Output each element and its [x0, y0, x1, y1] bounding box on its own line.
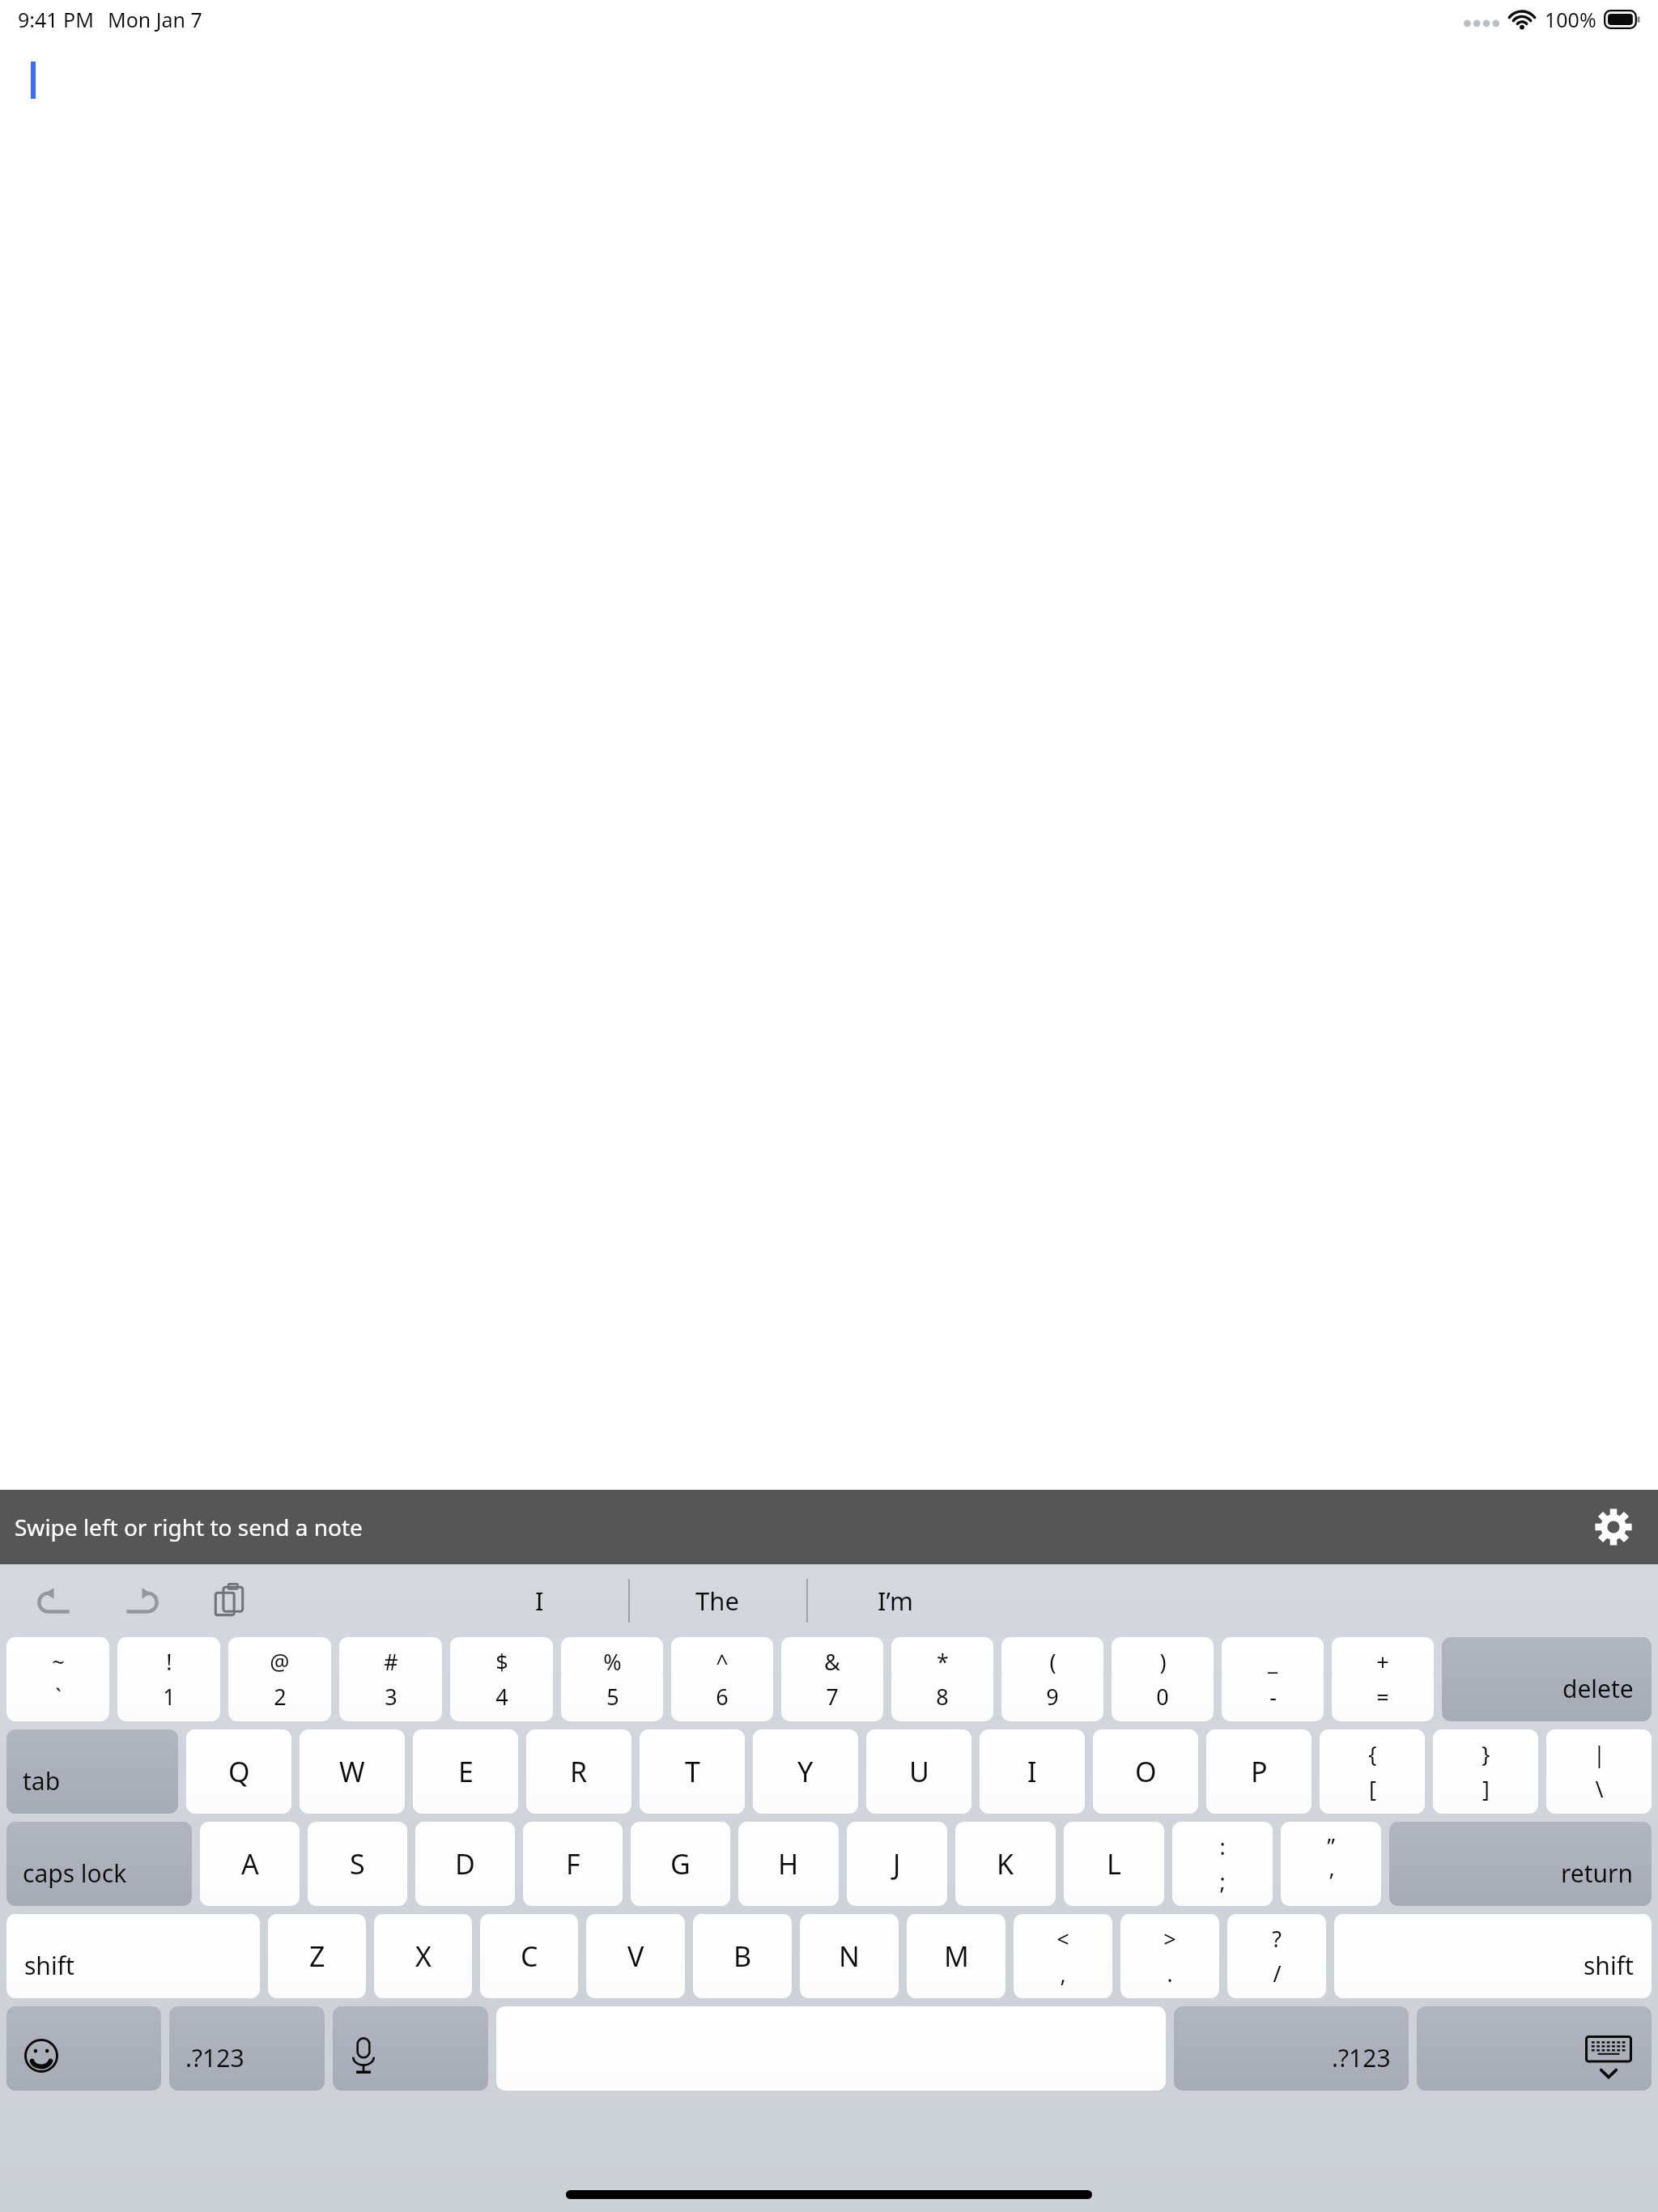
button[interactable]: Q	[186, 1729, 291, 1814]
button[interactable]: )	[1112, 1637, 1214, 1721]
button[interactable]: &	[781, 1637, 883, 1721]
button[interactable]: ^	[671, 1637, 773, 1721]
button[interactable]: *	[891, 1637, 993, 1721]
staticText: +	[1376, 1647, 1389, 1677]
staticText: _	[1268, 1647, 1278, 1677]
staticText: &	[824, 1647, 840, 1677]
button[interactable]: caps lock	[6, 1822, 192, 1906]
button[interactable]: ~	[6, 1637, 109, 1721]
button[interactable]: B	[693, 1914, 792, 1998]
staticText: 2	[274, 1682, 287, 1712]
staticText: T	[685, 1753, 700, 1790]
button[interactable]: M	[907, 1914, 1005, 1998]
button[interactable]: U	[866, 1729, 971, 1814]
button[interactable]: +	[1332, 1637, 1434, 1721]
button[interactable]: K	[955, 1822, 1056, 1906]
button[interactable]: !	[117, 1637, 220, 1721]
button[interactable]: Keyboard settings	[1587, 1500, 1640, 1554]
button[interactable]: .?123	[169, 2006, 325, 2091]
button[interactable]: E	[413, 1729, 518, 1814]
button[interactable]: ?	[1227, 1914, 1326, 1998]
button[interactable]: >	[1120, 1914, 1219, 1998]
button[interactable]: I	[450, 1564, 628, 1637]
button[interactable]: I	[980, 1729, 1085, 1814]
button[interactable]: %	[561, 1637, 663, 1721]
staticText: M	[944, 1938, 969, 1975]
button[interactable]: ”	[1281, 1822, 1381, 1906]
button[interactable]: J	[847, 1822, 947, 1906]
button[interactable]: I’m	[806, 1564, 984, 1637]
button[interactable]: Paste	[202, 1574, 256, 1627]
button[interactable]: G	[631, 1822, 730, 1906]
staticText: @	[270, 1647, 290, 1677]
button[interactable]: W	[300, 1729, 405, 1814]
button[interactable]: N	[800, 1914, 899, 1998]
button[interactable]: A	[200, 1822, 300, 1906]
staticText: ’	[1329, 1866, 1333, 1896]
staticText: ,	[1060, 1959, 1066, 1989]
staticText: ”	[1327, 1831, 1335, 1861]
button[interactable]: }	[1433, 1729, 1538, 1814]
staticText: caps lock	[23, 1857, 127, 1890]
button[interactable]: Z	[268, 1914, 366, 1998]
button[interactable]: return	[1389, 1822, 1652, 1906]
button[interactable]: tab	[6, 1729, 178, 1814]
other: Dictation	[351, 2037, 376, 2074]
button[interactable]: Redo	[115, 1574, 168, 1627]
button[interactable]: .?123	[1174, 2006, 1409, 2091]
staticText: S	[350, 1845, 365, 1882]
button[interactable]: <	[1014, 1914, 1112, 1998]
staticText: 4	[495, 1682, 508, 1712]
button[interactable]: X	[374, 1914, 472, 1998]
button[interactable]: The	[628, 1564, 806, 1637]
button[interactable]: O	[1093, 1729, 1198, 1814]
staticText: .	[1167, 1959, 1173, 1989]
staticText: 3	[385, 1682, 397, 1712]
button[interactable]: S	[308, 1822, 407, 1906]
button[interactable]: C	[480, 1914, 578, 1998]
staticText: ]	[1482, 1774, 1490, 1804]
button[interactable]: shift	[1334, 1914, 1652, 1998]
button[interactable]: R	[526, 1729, 631, 1814]
button[interactable]: {	[1320, 1729, 1425, 1814]
button[interactable]: L	[1064, 1822, 1164, 1906]
button[interactable]: $	[450, 1637, 553, 1721]
button[interactable]	[496, 2006, 1166, 2091]
staticText: 1	[163, 1682, 176, 1712]
staticText: The	[695, 1584, 739, 1618]
staticText: J	[893, 1845, 901, 1882]
button[interactable]: shift	[6, 1914, 260, 1998]
staticText: return	[1561, 1857, 1634, 1890]
staticText: shift	[24, 1949, 74, 1982]
button[interactable]: |	[1546, 1729, 1652, 1814]
button[interactable]: P	[1206, 1729, 1312, 1814]
button[interactable]: Hide keyboard	[1417, 2006, 1652, 2091]
button[interactable]: V	[586, 1914, 685, 1998]
button[interactable]: delete	[1442, 1637, 1652, 1721]
staticText: U	[909, 1753, 929, 1790]
button[interactable]: @	[228, 1637, 331, 1721]
button[interactable]: (	[1001, 1637, 1103, 1721]
button[interactable]: Undo	[28, 1574, 81, 1627]
staticText: E	[458, 1753, 474, 1790]
button[interactable]: Dictation	[333, 2006, 488, 2091]
staticText: 9:41 PM	[18, 6, 94, 33]
staticText: Mon Jan 7	[108, 6, 202, 33]
button[interactable]: F	[523, 1822, 623, 1906]
staticText: P	[1251, 1753, 1268, 1790]
other: Emoji	[24, 2039, 58, 2073]
staticText: `	[55, 1682, 62, 1712]
button[interactable]: T	[640, 1729, 745, 1814]
staticText: 5	[606, 1682, 619, 1712]
staticText: 6	[716, 1682, 729, 1712]
button[interactable]: H	[738, 1822, 839, 1906]
button[interactable]: Emoji	[6, 2006, 161, 2091]
staticText: tab	[23, 1764, 61, 1797]
button[interactable]: _	[1222, 1637, 1324, 1721]
button[interactable]: Y	[753, 1729, 858, 1814]
staticText: 9	[1046, 1682, 1059, 1712]
button[interactable]: #	[339, 1637, 442, 1721]
button[interactable]: D	[415, 1822, 515, 1906]
button[interactable]: :	[1172, 1822, 1273, 1906]
staticText: *	[937, 1647, 949, 1677]
